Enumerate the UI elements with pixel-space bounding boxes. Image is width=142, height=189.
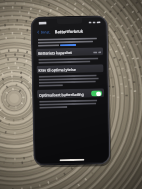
staticText: Batteriets kapasitet: [38, 50, 72, 56]
button[interactable]: Batteriets kapasitet: [36, 47, 103, 57]
staticText: Innst.: [41, 29, 51, 35]
button[interactable]: Optimalisert batterilading: [37, 88, 104, 99]
button[interactable]: Krav til optimal ytelse: [36, 64, 104, 74]
button[interactable]: Tilbake: [36, 28, 52, 36]
button[interactable]: Optimalisert batterilading på: [91, 90, 102, 96]
button[interactable]: [60, 44, 76, 46]
staticText: Krav til optimal ytelse: [38, 67, 77, 73]
staticText: Batteri­forbruk: [55, 29, 84, 34]
staticText: Optimalisert batterilading: [39, 92, 84, 98]
